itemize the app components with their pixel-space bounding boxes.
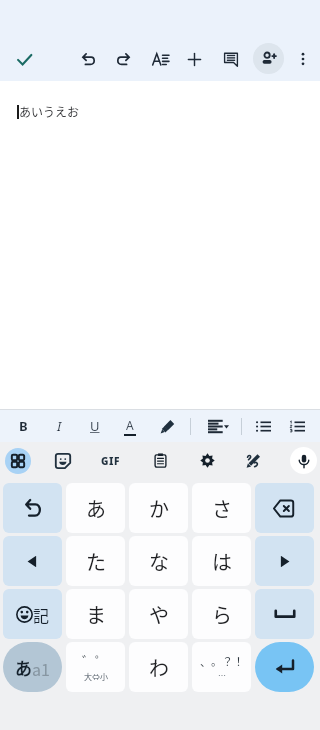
button[interactable]: Keyboard modes	[5, 448, 31, 474]
staticText: ま	[86, 600, 106, 629]
staticText: ら	[212, 600, 232, 629]
staticText: B	[19, 417, 28, 435]
staticText: あいうえお	[19, 103, 80, 120]
button[interactable]: Undo	[3, 483, 62, 533]
button[interactable]: GIF	[92, 445, 128, 477]
button[interactable]: Punctuation	[192, 642, 251, 692]
button[interactable]: Text colour	[113, 410, 147, 442]
staticText: 記	[33, 603, 50, 626]
staticText: 、。？！	[200, 653, 244, 669]
button[interactable]: Share	[253, 43, 284, 74]
button[interactable]: さ	[192, 483, 251, 533]
button[interactable]: Insert	[176, 39, 212, 79]
button[interactable]: I	[42, 410, 76, 442]
button[interactable]: Align	[199, 410, 237, 442]
button[interactable]: B	[6, 410, 40, 442]
button[interactable]: ま	[66, 589, 125, 639]
button[interactable]: わ	[129, 642, 188, 692]
staticText: た	[86, 547, 106, 576]
staticText: あ	[15, 655, 32, 680]
button[interactable]: Text formatting	[142, 39, 178, 79]
button[interactable]: な	[129, 536, 188, 586]
button[interactable]: Stickers	[45, 442, 81, 479]
staticText: か	[149, 494, 169, 523]
staticText: a1	[32, 657, 50, 680]
button[interactable]: Done	[6, 39, 42, 79]
button[interactable]: Numbered list	[279, 410, 315, 442]
button[interactable]: Clipboard	[142, 442, 178, 479]
button[interactable]: Redo	[105, 39, 141, 79]
staticText: や	[149, 600, 169, 629]
staticText: わ	[149, 653, 169, 682]
button[interactable]: ら	[192, 589, 251, 639]
button[interactable]: あ	[66, 483, 125, 533]
staticText: ゛゜	[82, 651, 109, 670]
staticText: I	[57, 417, 62, 435]
button[interactable]: Undo	[71, 39, 107, 79]
staticText: A	[126, 417, 134, 433]
button[interactable]: Emoji and symbols	[3, 589, 62, 639]
button[interactable]: は	[192, 536, 251, 586]
button[interactable]: Left	[3, 536, 62, 586]
button[interactable]: Bulleted list	[245, 410, 281, 442]
staticText: 大⇔小	[84, 671, 108, 683]
button[interactable]: た	[66, 536, 125, 586]
staticText: …	[218, 670, 226, 682]
button[interactable]: や	[129, 589, 188, 639]
staticText: さ	[212, 494, 232, 523]
staticText: あ	[86, 494, 106, 523]
button[interactable]: More options	[285, 39, 320, 79]
staticText: は	[212, 547, 232, 576]
button[interactable]: Highlight	[149, 410, 185, 442]
button[interactable]: U	[78, 410, 112, 442]
button[interactable]: Switch input mode	[3, 642, 62, 692]
button[interactable]: Settings	[189, 442, 225, 479]
staticText: U	[90, 417, 100, 435]
button[interactable]: Space	[255, 589, 314, 639]
button[interactable]: Comments	[213, 39, 249, 79]
button[interactable]: Dakuten	[66, 642, 125, 692]
button[interactable]: Handwriting	[235, 442, 271, 479]
button[interactable]: Enter	[255, 642, 314, 692]
staticText: な	[149, 547, 169, 576]
staticText: GIF	[101, 454, 120, 468]
button[interactable]: か	[129, 483, 188, 533]
button[interactable]: Voice input	[290, 447, 317, 474]
button[interactable]: Backspace	[255, 483, 314, 533]
button[interactable]: Right	[255, 536, 314, 586]
